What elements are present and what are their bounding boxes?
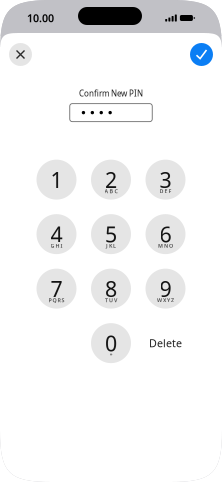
button[interactable]: Delete: [145, 323, 185, 363]
button[interactable]: 2: [91, 160, 131, 200]
staticText: TUV: [105, 297, 117, 304]
staticText: 9: [159, 274, 171, 303]
staticText: 3: [159, 165, 171, 194]
staticText: 10.00: [27, 11, 54, 25]
button[interactable]: 6: [145, 214, 185, 254]
button[interactable]: 7: [36, 269, 76, 309]
staticText: 0: [105, 329, 117, 357]
staticText: 8: [105, 274, 117, 303]
button[interactable]: Confirm: [190, 43, 213, 66]
button[interactable]: 1: [36, 160, 76, 200]
button[interactable]: 5: [91, 214, 131, 254]
button[interactable]: 3: [145, 160, 185, 200]
staticText: 6: [159, 220, 171, 248]
button[interactable]: 4: [36, 214, 76, 254]
staticText: 5: [105, 220, 117, 248]
staticText: +: [109, 351, 112, 358]
staticText: 4: [50, 220, 62, 248]
staticText: GHI: [50, 242, 62, 249]
staticText: 7: [50, 274, 62, 303]
staticText: DEF: [159, 188, 171, 195]
staticText: Confirm New PIN: [79, 88, 143, 99]
button[interactable]: Close: [9, 43, 32, 66]
staticText: MNO: [158, 242, 173, 249]
staticText: PQRS: [48, 297, 64, 304]
button[interactable]: 0: [91, 323, 131, 363]
staticText: 1: [50, 165, 62, 194]
staticText: Delete: [149, 336, 182, 350]
staticText: WXYZ: [157, 297, 174, 304]
staticText: 2: [105, 165, 117, 194]
button[interactable]: 9: [145, 269, 185, 309]
staticText: ABC: [104, 188, 117, 195]
staticText: JKL: [106, 242, 116, 249]
button[interactable]: 8: [91, 269, 131, 309]
